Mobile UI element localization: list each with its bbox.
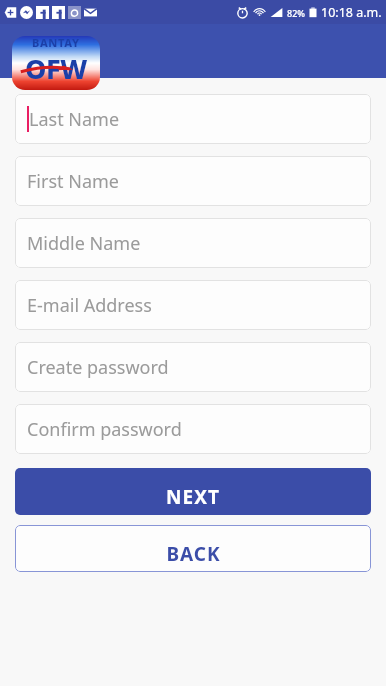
button[interactable]: Middle Name xyxy=(15,218,371,268)
staticText: E-mail Address xyxy=(27,293,152,318)
button[interactable]: Confirm password xyxy=(15,404,371,454)
staticText: BACK xyxy=(166,541,221,567)
staticText: First Name xyxy=(27,169,119,194)
staticText: Create password xyxy=(27,355,169,380)
staticText: Last Name xyxy=(29,107,120,132)
button[interactable]: Last Name xyxy=(15,94,371,144)
staticText: Middle Name xyxy=(27,231,141,256)
button[interactable]: First Name xyxy=(15,156,371,206)
button[interactable]: Bantay OFW logo xyxy=(12,36,100,90)
staticText: 10:18 a.m. xyxy=(321,4,382,21)
staticText: BANTAY xyxy=(32,36,80,50)
staticText: OFW xyxy=(25,50,87,87)
staticText: 82% xyxy=(287,7,305,19)
button[interactable]: Create password xyxy=(15,342,371,392)
staticText: Confirm password xyxy=(27,417,182,442)
button[interactable]: NEXT xyxy=(15,468,371,515)
staticText: NEXT xyxy=(166,484,220,510)
button[interactable]: BACK xyxy=(15,525,371,572)
button[interactable]: E-mail Address xyxy=(15,280,371,330)
